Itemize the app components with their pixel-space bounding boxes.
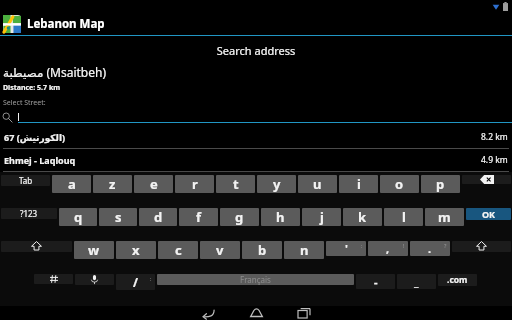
button[interactable]: Shift [1,241,72,252]
button[interactable]: ?123 [1,208,57,219]
staticText: 8.2 km [481,131,508,143]
staticText: g [235,208,244,226]
button[interactable]: ' [326,241,366,256]
staticText: Lebanon Map [27,16,105,32]
staticText: ? [444,242,447,249]
staticText: k [358,208,367,226]
staticText: Search address [0,43,512,58]
staticText: ?123 [20,208,38,219]
staticText: l [402,208,406,226]
staticText: s [115,208,122,226]
button[interactable]: g [220,208,259,226]
button[interactable]: l [384,208,423,226]
staticText: b [258,241,267,259]
staticText: w [88,241,100,259]
staticText: . [428,241,432,256]
button[interactable]: .com [438,274,477,286]
staticText: v [216,241,224,259]
button[interactable]: c [158,241,198,259]
button[interactable]: d [139,208,177,226]
staticText: x [132,241,140,259]
button[interactable]: b [242,241,282,259]
button[interactable]: m [425,208,464,226]
button[interactable]: h [261,208,300,226]
button[interactable]: u [298,175,337,193]
staticText: q [74,208,83,226]
staticText: مصيطبة (Msaitbeh) [3,64,107,80]
button[interactable]: - [356,274,395,289]
button[interactable]: t [216,175,255,193]
button[interactable]: y [257,175,296,193]
staticText: a [68,175,76,193]
button[interactable]: Tab [1,175,50,186]
button[interactable]: e [134,175,173,193]
button[interactable]: a [52,175,91,193]
button[interactable]: _ [397,274,436,289]
button[interactable]: . [410,241,450,256]
staticText: / [133,274,138,290]
button[interactable]: 67 (الكورنيش) [0,126,512,148]
button[interactable]: Change language [34,274,73,284]
button[interactable]: w [74,241,114,259]
button[interactable]: / [116,274,155,290]
button[interactable]: Space [157,274,354,285]
button[interactable] [0,110,512,123]
staticText: y [273,175,281,193]
button[interactable]: Lebanon Map [0,13,512,35]
staticText: Tab [19,175,33,186]
staticText: Select Street: [3,98,46,108]
button[interactable]: o [380,175,419,193]
staticText: : [361,242,363,249]
button[interactable]: f [179,208,218,226]
staticText: , [386,241,390,256]
button[interactable]: p [421,175,460,193]
staticText: m [438,208,451,226]
button[interactable]: v [200,241,240,259]
staticText: z [109,175,116,193]
button[interactable]: Ehmej - Laqlouq [0,149,512,171]
button[interactable]: x [116,241,156,259]
staticText: d [154,208,163,226]
staticText: 4.9 km [481,154,508,166]
button[interactable]: Recent apps [294,306,314,320]
button[interactable]: Backspace [462,175,511,184]
staticText: .com [447,274,468,286]
staticText: ' [345,241,348,256]
staticText: OK [482,208,496,220]
staticText: n [300,241,309,259]
button[interactable]: Voice input [75,274,114,285]
button[interactable]: i [339,175,378,193]
staticText: j [320,208,324,226]
staticText: Français [240,274,271,285]
button[interactable]: OK [466,208,511,220]
button[interactable]: j [302,208,341,226]
button[interactable]: , [368,241,408,256]
staticText: t [233,175,239,193]
staticText: c [175,241,182,259]
staticText: i [357,175,361,193]
button[interactable]: z [93,175,132,193]
button[interactable]: Home [246,306,266,320]
staticText: f [196,208,202,226]
button[interactable]: s [99,208,137,226]
button[interactable]: r [175,175,214,193]
button[interactable]: k [343,208,382,226]
button[interactable]: Back [198,306,218,320]
staticText: ! [403,242,405,249]
staticText: - [374,274,378,289]
staticText: u [313,175,322,193]
staticText: Ehmej - Laqlouq [4,154,481,166]
staticText: e [150,175,158,193]
staticText: Distance: 5.7 km [3,83,61,93]
button[interactable]: q [59,208,97,226]
staticText: r [192,175,198,193]
button[interactable]: n [284,241,324,259]
staticText: h [276,208,285,226]
staticText: : [150,275,152,282]
button[interactable]: Shift [452,241,511,252]
staticText: p [436,175,445,193]
staticText: _ [414,274,419,289]
staticText: o [395,175,404,193]
staticText: 67 (الكورنيش) [4,131,481,143]
